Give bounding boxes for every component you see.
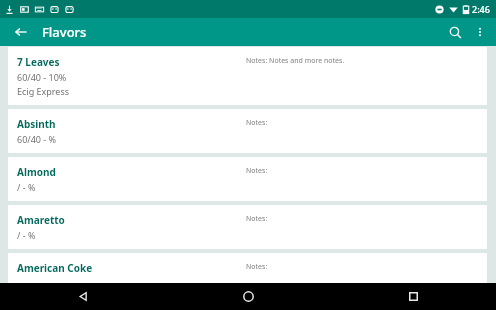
- staticText: / - %: [17, 181, 36, 193]
- button[interactable]: More options: [468, 20, 492, 44]
- staticText: 60/40 - 10%: [17, 71, 67, 83]
- button[interactable]: Absinth: [8, 109, 487, 153]
- staticText: 60/40 - %: [17, 133, 56, 145]
- button[interactable]: Back: [8, 19, 34, 45]
- button[interactable]: Search: [442, 19, 468, 45]
- staticText: Absinth: [17, 117, 56, 131]
- button[interactable]: Recent apps: [331, 283, 496, 310]
- button[interactable]: Amaretto: [8, 205, 487, 249]
- staticText: American Coke: [17, 261, 93, 275]
- staticText: Notes: Notes and more notes.: [246, 56, 345, 66]
- staticText: Ecig Express: [17, 85, 70, 97]
- button[interactable]: Home: [166, 283, 331, 310]
- button[interactable]: Back: [0, 283, 166, 310]
- staticText: Notes:: [246, 118, 268, 128]
- staticText: 7 Leaves: [17, 55, 60, 69]
- staticText: Notes:: [246, 166, 268, 176]
- button[interactable]: Almond: [8, 157, 487, 201]
- staticText: 2:46: [472, 3, 490, 15]
- staticText: Notes:: [246, 214, 268, 224]
- staticText: Almond: [17, 165, 56, 179]
- button[interactable]: 7 Leaves: [8, 47, 487, 105]
- staticText: Notes:: [246, 262, 268, 272]
- staticText: Flavors: [42, 23, 87, 41]
- button[interactable]: American Coke: [8, 253, 487, 283]
- staticText: Amaretto: [17, 213, 65, 227]
- staticText: / - %: [17, 229, 36, 241]
